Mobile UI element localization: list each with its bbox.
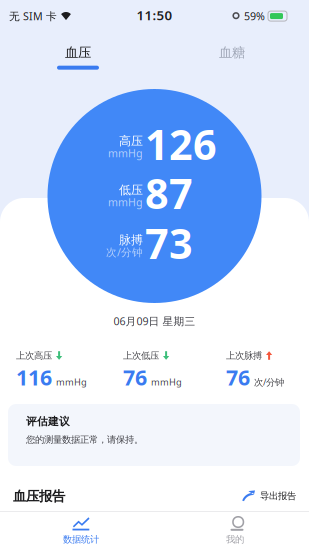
- staticText: 上次高压: [16, 350, 52, 361]
- staticText: 59%: [244, 9, 265, 23]
- staticText: 高压: [119, 134, 143, 148]
- staticText: 导出报告: [260, 490, 296, 502]
- staticText: 73: [145, 216, 193, 270]
- staticText: 血糖: [219, 44, 245, 61]
- staticText: 血压报告: [13, 488, 65, 504]
- staticText: 数据统计: [63, 534, 99, 545]
- staticText: 87: [145, 166, 193, 220]
- staticText: mmHg: [151, 376, 182, 388]
- staticText: 11:50: [136, 6, 172, 24]
- staticText: 76: [123, 363, 147, 391]
- staticText: 我的: [226, 534, 244, 545]
- button[interactable]: 数据统计: [36, 514, 126, 548]
- staticText: mmHg: [108, 195, 143, 209]
- staticText: mmHg: [56, 376, 87, 388]
- staticText: 血压: [65, 44, 91, 61]
- staticText: 126: [145, 117, 217, 171]
- button[interactable]: 血糖: [201, 41, 263, 73]
- button[interactable]: 血压: [47, 41, 109, 73]
- staticText: 06月09日 星期三: [113, 314, 195, 328]
- staticText: 76: [226, 363, 250, 391]
- staticText: 低压: [119, 183, 143, 197]
- staticText: mmHg: [108, 146, 143, 160]
- staticText: 无 SIM 卡: [9, 9, 57, 23]
- staticText: 上次低压: [123, 350, 159, 361]
- staticText: 次/分钟: [106, 245, 143, 259]
- button[interactable]: 我的: [190, 514, 280, 548]
- staticText: 您的测量数据正常，请保持。: [26, 434, 143, 445]
- button[interactable]: 导出报告: [242, 488, 296, 504]
- staticText: 上次脉搏: [226, 350, 262, 361]
- staticText: 脉搏: [119, 233, 143, 247]
- staticText: 次/分钟: [254, 376, 284, 388]
- staticText: 116: [16, 363, 52, 391]
- staticText: 评估建议: [26, 415, 70, 428]
